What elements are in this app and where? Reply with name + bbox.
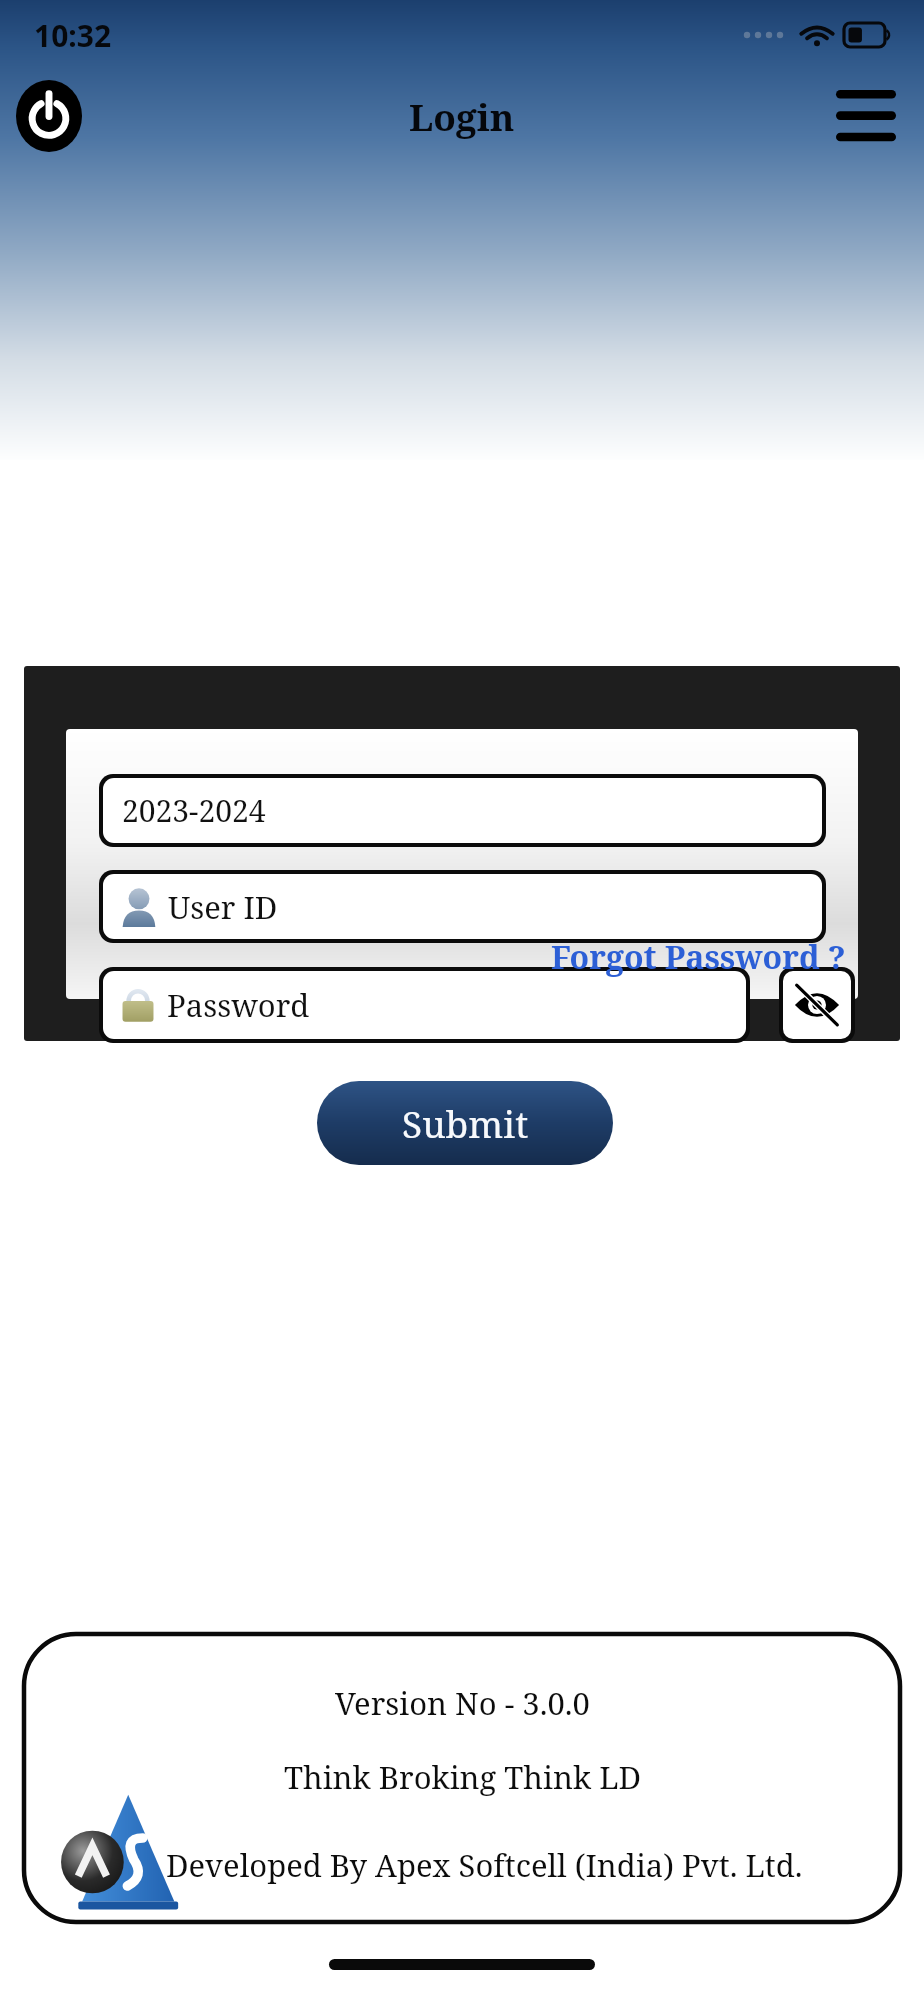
staticText: 10:32 bbox=[34, 15, 112, 56]
button[interactable]: Forgot Password ? bbox=[547, 933, 850, 981]
staticText: Version No - 3.0.0 bbox=[335, 1682, 590, 1724]
button[interactable]: Menu bbox=[834, 86, 898, 146]
staticText: Forgot Password ? bbox=[551, 935, 846, 979]
button[interactable]: Submit bbox=[312, 1076, 618, 1170]
button[interactable]: Password bbox=[99, 967, 750, 1043]
button[interactable]: 2023-2024 bbox=[99, 774, 826, 847]
staticText: Think Broking Think LD bbox=[284, 1756, 641, 1798]
staticText: Developed By Apex Softcell (India) Pvt. … bbox=[166, 1844, 803, 1886]
staticText: Login bbox=[409, 91, 515, 141]
button[interactable]: Show password bbox=[779, 967, 855, 1043]
staticText: User ID bbox=[168, 886, 278, 928]
staticText: Password bbox=[167, 984, 310, 1026]
button[interactable]: Power bbox=[16, 80, 82, 152]
button[interactable]: User ID bbox=[99, 870, 826, 943]
staticText: Submit bbox=[402, 1098, 529, 1148]
staticText: 2023-2024 bbox=[122, 790, 266, 831]
